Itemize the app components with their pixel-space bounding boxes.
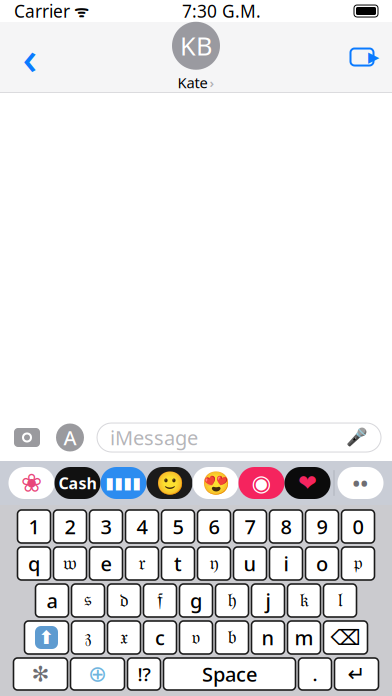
- staticText: .: [312, 662, 317, 686]
- button[interactable]: 𝔥: [215, 584, 248, 617]
- button[interactable]: u: [233, 547, 266, 580]
- staticText: 𝔰: [84, 591, 92, 610]
- staticText: 𝔴: [63, 554, 77, 573]
- button[interactable]: Shift: [24, 621, 68, 654]
- button[interactable]: .: [298, 658, 331, 690]
- staticText: ⊕: [88, 661, 107, 687]
- staticText: Kate: [177, 73, 207, 92]
- button[interactable]: Photos: [8, 467, 54, 499]
- button[interactable]: 𝔭: [341, 547, 374, 580]
- button[interactable]: 𝔟: [215, 621, 248, 654]
- button[interactable]: 9: [305, 510, 338, 543]
- staticText: 𝔳: [191, 628, 200, 647]
- button[interactable]: t: [161, 547, 194, 580]
- staticText: q: [28, 550, 40, 577]
- button[interactable]: FaceTime: [340, 35, 384, 79]
- staticText: 𝔣: [157, 591, 163, 610]
- staticText: 🎤: [346, 428, 368, 447]
- button[interactable]: Apple Cash: [54, 467, 100, 499]
- button[interactable]: Space: [163, 658, 295, 690]
- staticText: ⬆: [38, 627, 54, 648]
- staticText: m: [294, 624, 313, 651]
- button[interactable]: 1: [17, 510, 50, 543]
- button[interactable]: 𝔳: [179, 621, 212, 654]
- staticText: ⌫: [330, 625, 360, 650]
- button[interactable]: m: [287, 621, 320, 654]
- staticText: ◉: [251, 470, 271, 496]
- staticText: t: [174, 550, 182, 577]
- staticText: 𝔟: [227, 628, 236, 647]
- button[interactable]: 7: [233, 510, 266, 543]
- button[interactable]: 𝔰: [71, 584, 104, 617]
- button[interactable]: Audio: [100, 467, 146, 499]
- staticText: 3: [100, 513, 111, 540]
- staticText: ›: [209, 74, 214, 91]
- staticText: Cash: [58, 472, 96, 494]
- button[interactable]: ✻: [13, 658, 67, 690]
- staticText: Carrier: [14, 0, 70, 22]
- staticText: ᯤ: [70, 0, 89, 22]
- button[interactable]: 𝔶: [197, 547, 230, 580]
- button[interactable]: Animoji: [192, 467, 238, 499]
- staticText: ••: [352, 470, 368, 496]
- button[interactable]: 𝔷: [71, 621, 104, 654]
- button[interactable]: i: [269, 547, 302, 580]
- button[interactable]: c: [143, 621, 176, 654]
- button[interactable]: ↵: [334, 658, 378, 690]
- staticText: ▶: [368, 49, 379, 65]
- button[interactable]: !?: [127, 658, 160, 690]
- staticText: 5: [172, 513, 183, 540]
- button[interactable]: Camera: [11, 422, 43, 452]
- staticText: 8: [280, 513, 291, 540]
- staticText: 😍: [201, 470, 229, 496]
- button[interactable]: 8: [269, 510, 302, 543]
- button[interactable]: g: [179, 584, 212, 617]
- staticText: 𝔷: [84, 628, 91, 647]
- button[interactable]: 𝔩: [323, 584, 356, 617]
- staticText: u: [243, 550, 256, 577]
- staticText: A: [63, 424, 76, 451]
- staticText: 𝔭: [353, 554, 362, 573]
- staticText: o: [316, 550, 328, 577]
- button[interactable]: 𝔵: [107, 621, 140, 654]
- staticText: ❤: [298, 470, 317, 496]
- button[interactable]: 0: [341, 510, 374, 543]
- button[interactable]: 6: [197, 510, 230, 543]
- button[interactable]: 𝔡: [107, 584, 140, 617]
- button[interactable]: o: [305, 547, 338, 580]
- button[interactable]: j: [251, 584, 284, 617]
- button[interactable]: More: [337, 467, 383, 499]
- button[interactable]: 𝔨: [287, 584, 320, 617]
- button[interactable]: 𝔣: [143, 584, 176, 617]
- button[interactable]: a: [35, 584, 68, 617]
- button[interactable]: 𝔯: [125, 547, 158, 580]
- button[interactable]: 3: [89, 510, 122, 543]
- button[interactable]: iMessage: [97, 423, 381, 452]
- button[interactable]: 5: [161, 510, 194, 543]
- staticText: !?: [137, 662, 150, 686]
- button[interactable]: 4: [125, 510, 158, 543]
- button[interactable]: e: [89, 547, 122, 580]
- staticText: 7: [244, 513, 255, 540]
- staticText: 4: [136, 513, 147, 540]
- staticText: 9: [316, 513, 327, 540]
- staticText: ‹: [22, 27, 37, 87]
- staticText: 7:30 G.M.: [182, 0, 261, 22]
- button[interactable]: n: [251, 621, 284, 654]
- button[interactable]: 𝔴: [53, 547, 86, 580]
- button[interactable]: Images: [238, 467, 284, 499]
- staticText: a: [46, 587, 57, 614]
- staticText: 𝔡: [119, 591, 128, 610]
- staticText: 𝔩: [337, 591, 342, 610]
- staticText: 𝔨: [299, 591, 308, 610]
- staticText: 1: [28, 513, 39, 540]
- button[interactable]: q: [17, 547, 50, 580]
- button[interactable]: Digital Touch: [284, 467, 330, 499]
- button[interactable]: Delete: [323, 621, 367, 654]
- button[interactable]: ⊕: [70, 658, 124, 690]
- button[interactable]: Back: [8, 35, 52, 79]
- staticText: 0: [352, 513, 363, 540]
- button[interactable]: Memoji: [146, 467, 192, 499]
- button[interactable]: App Store: [54, 422, 86, 452]
- button[interactable]: 2: [53, 510, 86, 543]
